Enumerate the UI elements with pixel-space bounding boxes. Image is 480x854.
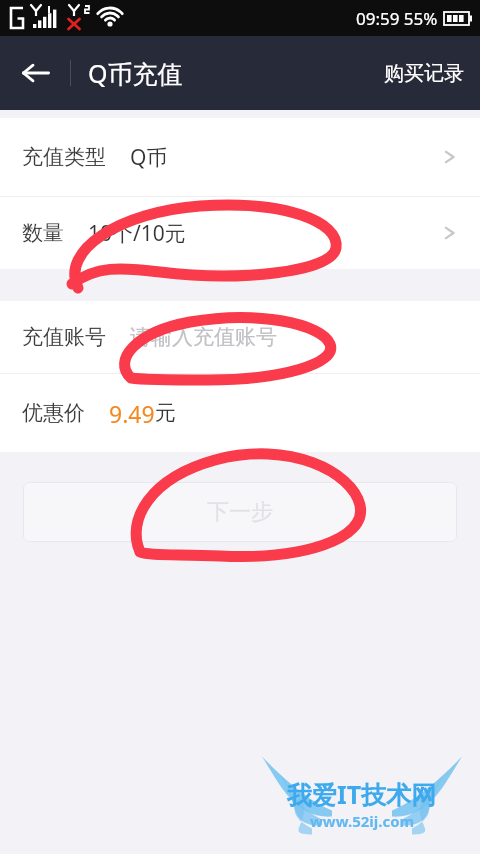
staticText: 充值类型 — [22, 144, 106, 170]
staticText: 优惠价 — [22, 400, 85, 426]
button[interactable]: 购买记录 — [368, 47, 480, 100]
staticText: 9.49 — [109, 398, 155, 429]
staticText: 09:59 55% — [356, 7, 438, 30]
button[interactable]: Back — [8, 45, 64, 101]
staticText: 下一步 — [207, 498, 273, 526]
staticText: 我爱IT技术网 — [287, 777, 437, 811]
button[interactable]: 数量 — [0, 197, 480, 269]
button[interactable]: 充值类型 — [0, 118, 480, 196]
staticText: 元 — [155, 400, 176, 426]
staticText: www.52ij.com — [310, 811, 415, 831]
staticText: 充值账号 — [22, 324, 106, 350]
staticText: 数量 — [22, 220, 64, 246]
staticText: 请输入充值账号 — [130, 324, 277, 350]
staticText: 10个/10元 — [88, 219, 186, 248]
button[interactable]: 下一步 — [23, 482, 457, 542]
staticText: 购买记录 — [384, 61, 464, 86]
staticText: Q币充值 — [88, 56, 183, 90]
button[interactable]: 充值账号 — [0, 301, 480, 373]
staticText: Q币 — [130, 143, 168, 172]
